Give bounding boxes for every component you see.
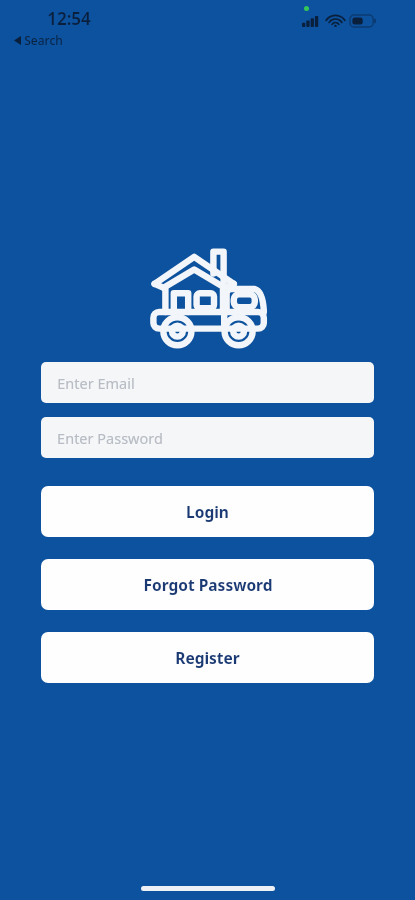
- button[interactable]: Enter Password: [41, 417, 374, 458]
- button[interactable]: Back to Search: [14, 32, 63, 48]
- staticText: Login: [186, 501, 229, 522]
- staticText: Enter Email: [57, 373, 135, 393]
- staticText: 12:54: [47, 7, 91, 30]
- button[interactable]: Enter Email: [41, 362, 374, 403]
- staticText: Search: [24, 32, 63, 48]
- button[interactable]: Forgot Password: [41, 559, 374, 610]
- staticText: Enter Password: [57, 428, 163, 448]
- staticText: Forgot Password: [143, 574, 273, 595]
- button[interactable]: Register: [41, 632, 374, 683]
- button[interactable]: Login: [41, 486, 374, 537]
- staticText: Register: [175, 647, 240, 668]
